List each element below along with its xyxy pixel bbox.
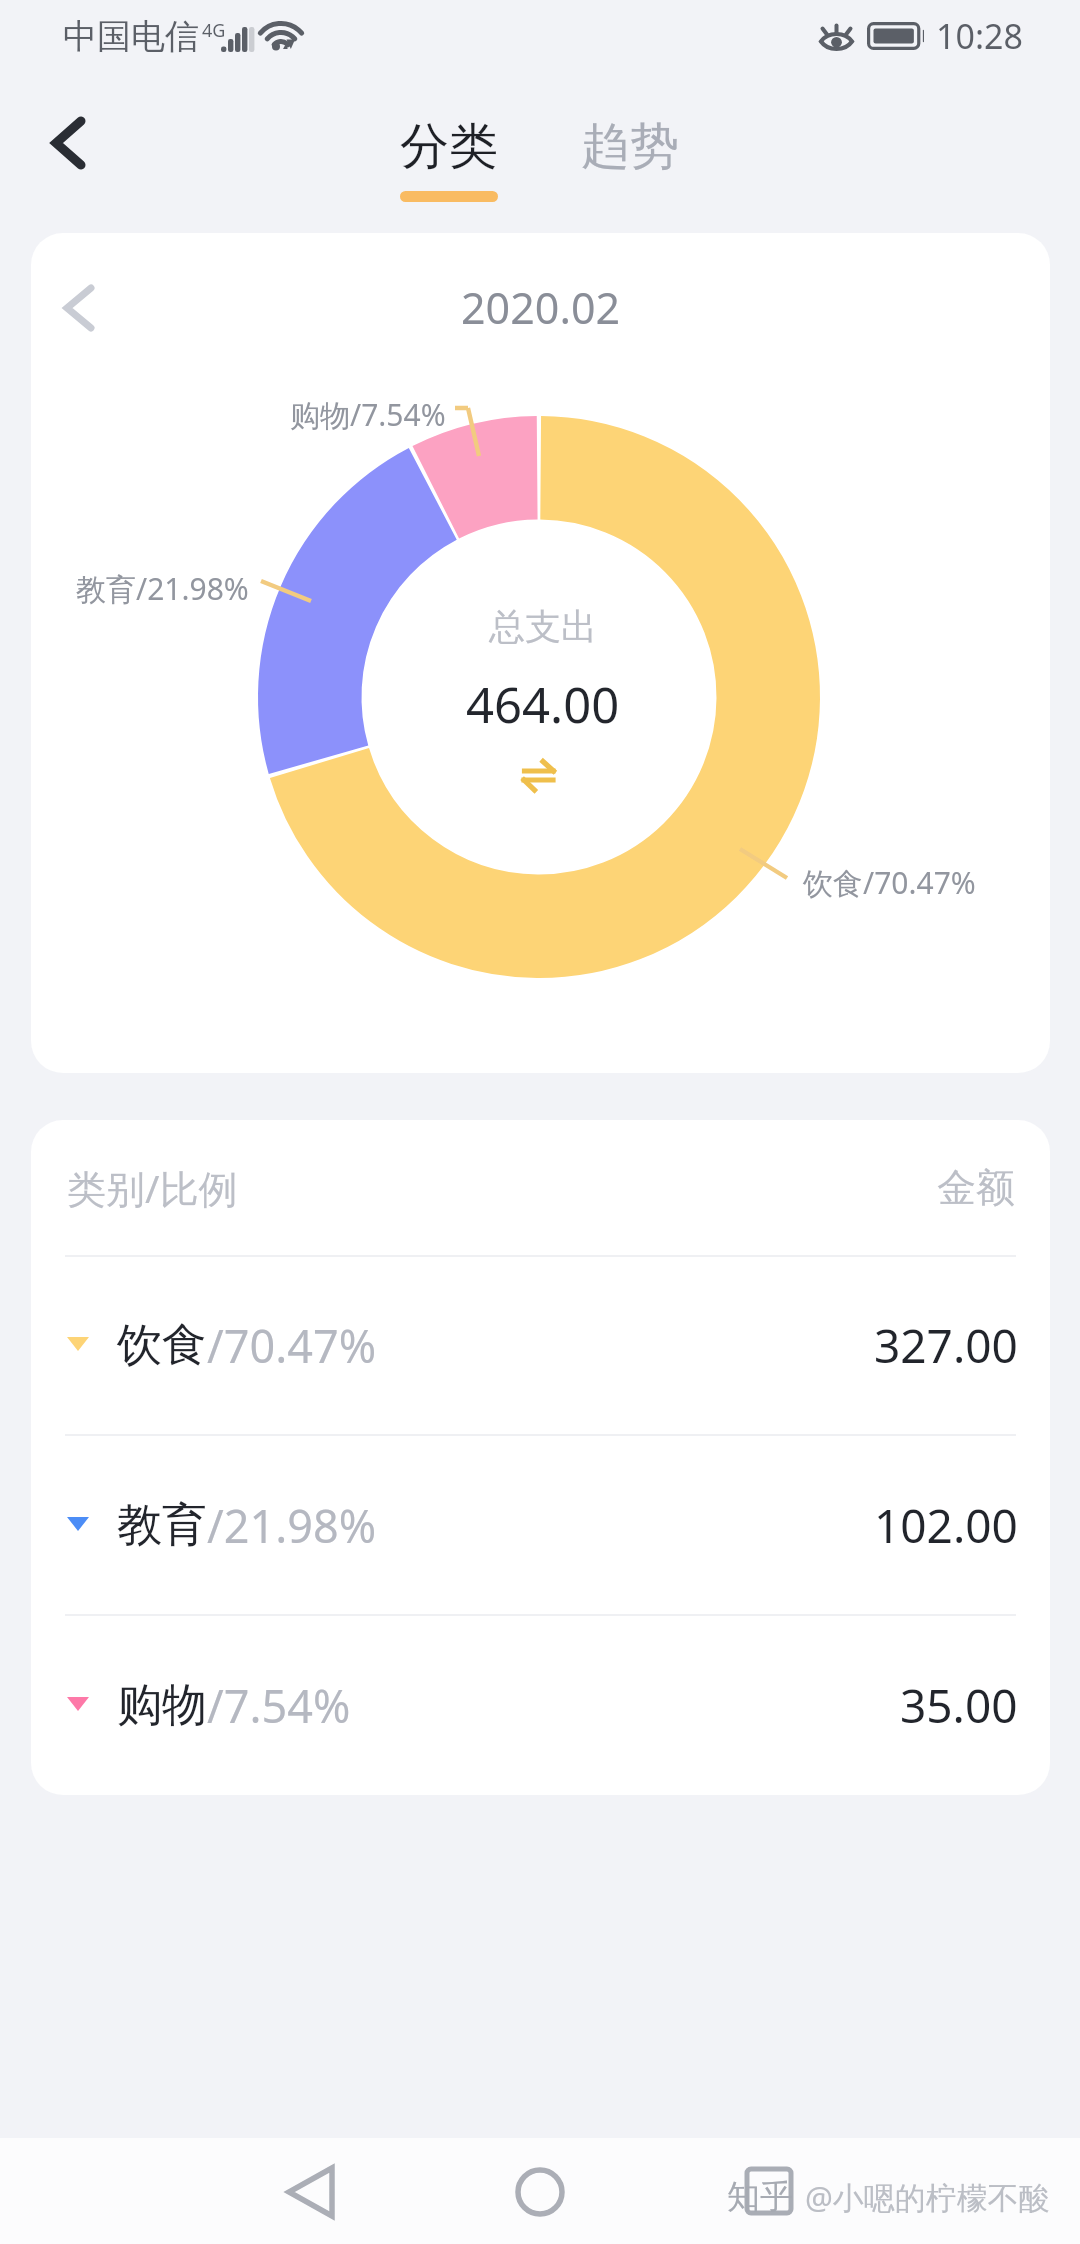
staticText: 分类 — [400, 116, 498, 178]
staticText: 464.00 — [466, 671, 620, 738]
staticText: 教育/21.98% — [76, 568, 249, 609]
staticText: 金额 — [937, 1163, 1015, 1212]
staticText: 教育 — [117, 1497, 207, 1554]
staticText: 2020.02 — [461, 278, 621, 337]
staticText: 购物 — [117, 1677, 207, 1734]
staticText: 趋势 — [581, 116, 679, 178]
staticText: 10:28 — [936, 13, 1023, 59]
staticText: /7.54% — [207, 1675, 351, 1736]
button[interactable]: 饮食 — [31, 1255, 1050, 1435]
staticText: 327.00 — [874, 1314, 1018, 1377]
button[interactable]: Switch currency — [522, 759, 558, 796]
staticText: 35.00 — [900, 1674, 1018, 1737]
button[interactable]: 购物 — [31, 1615, 1050, 1795]
button[interactable]: Previous month — [31, 253, 131, 353]
button[interactable]: Recents — [723, 2145, 815, 2237]
staticText: 中国电信 — [63, 15, 199, 58]
button[interactable]: 趋势 — [561, 110, 699, 210]
staticText: /70.47% — [207, 1315, 377, 1376]
staticText: 饮食/70.47% — [803, 862, 976, 903]
staticText: 总支出 — [489, 604, 597, 649]
button[interactable]: 教育 — [31, 1435, 1050, 1615]
staticText: /21.98% — [207, 1495, 377, 1556]
button[interactable]: Back — [26, 102, 112, 188]
staticText: 购物/7.54% — [290, 394, 446, 435]
button[interactable]: Back — [263, 2146, 355, 2238]
staticText: 102.00 — [874, 1494, 1018, 1557]
staticText: @小嗯的柠檬不酸 — [805, 2176, 1050, 2218]
staticText: 4G — [202, 18, 226, 43]
staticText: 类别/比例 — [67, 1161, 238, 1214]
button[interactable]: Home — [494, 2146, 586, 2238]
staticText: 知乎 — [727, 2176, 793, 2218]
button[interactable]: 分类 — [380, 110, 518, 210]
staticText: 饮食 — [117, 1317, 207, 1374]
